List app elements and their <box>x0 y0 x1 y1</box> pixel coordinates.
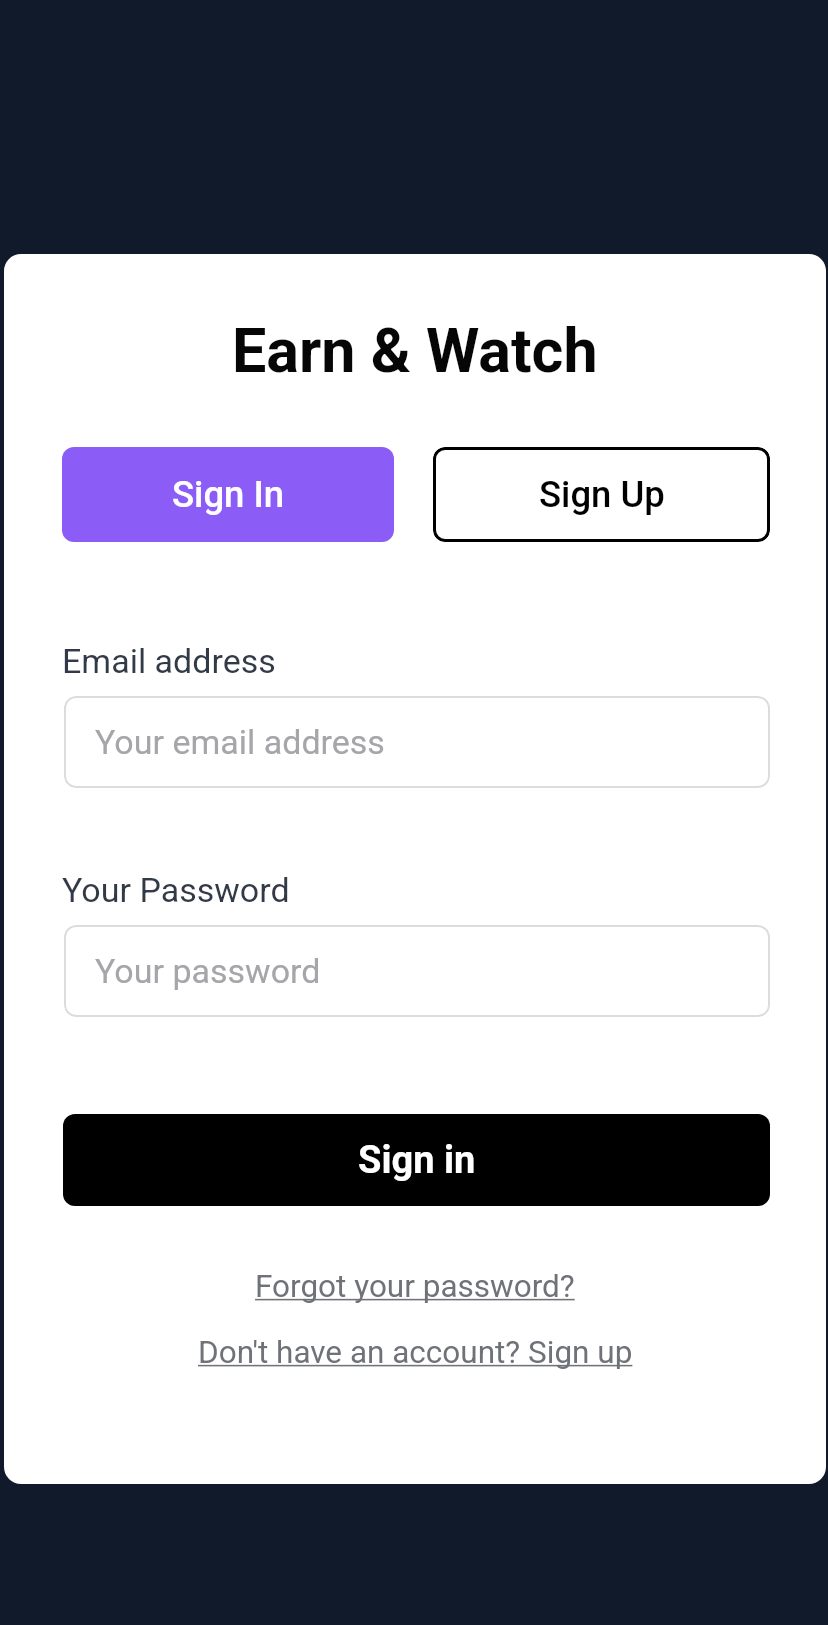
staticText: Sign Up <box>539 473 665 516</box>
staticText: Forgot your password? <box>255 1268 575 1305</box>
staticText: Your password <box>95 951 321 991</box>
button[interactable]: Forgot your password? <box>255 1268 575 1305</box>
button[interactable]: Don't have an account? Sign up <box>198 1334 633 1371</box>
staticText: Your Password <box>62 870 290 910</box>
button[interactable]: Your password <box>64 925 770 1017</box>
button[interactable]: Sign In <box>62 447 394 542</box>
staticText: Don't have an account? Sign up <box>198 1334 633 1371</box>
staticText: Sign in <box>358 1138 476 1183</box>
button[interactable]: Sign in <box>63 1114 770 1206</box>
staticText: Sign In <box>172 473 285 516</box>
button[interactable]: Sign Up <box>433 447 770 542</box>
staticText: Earn & Watch <box>232 315 598 386</box>
staticText: Email address <box>62 641 276 681</box>
button[interactable]: Your email address <box>64 696 770 788</box>
staticText: Your email address <box>95 722 385 762</box>
